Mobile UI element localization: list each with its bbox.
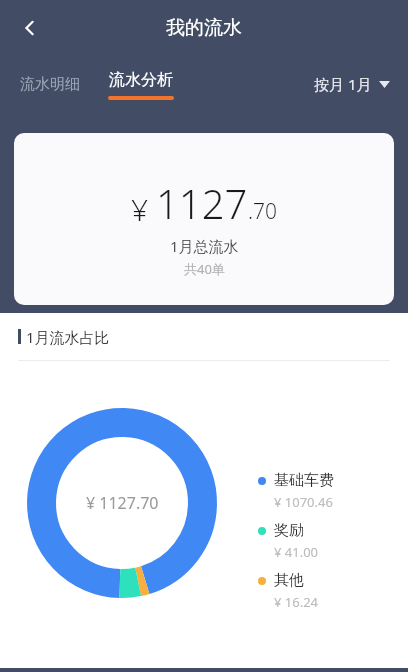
button[interactable]: Back [8,6,52,50]
staticText: 共40单 [184,260,225,278]
staticText: ¥ 1127.70 [86,492,159,514]
staticText: 我的流水 [166,16,242,40]
staticText: 其他 [274,571,304,590]
staticText: 1月流水占比 [26,327,110,347]
button[interactable]: 基础车费 [258,471,334,511]
staticText: ¥ 16.24 [274,593,319,611]
button[interactable]: 流水明细 [14,67,86,102]
staticText: ¥ 41.00 [274,543,319,561]
staticText: 奖励 [274,521,304,540]
button[interactable]: 流水分析 [102,68,180,102]
staticText: 1127 [156,176,248,230]
staticText: .70 [248,197,278,226]
staticText: 流水明细 [20,75,80,94]
staticText: ¥ 1070.46 [274,493,333,511]
button[interactable]: ¥ [14,133,394,305]
staticText: 1月总流水 [170,236,239,256]
button[interactable]: 其他 [258,571,319,611]
staticText: 基础车费 [274,471,334,490]
staticText: 流水分析 [109,70,173,90]
staticText: 按月 1月 [314,74,372,94]
staticText: ¥ [131,189,156,230]
button[interactable]: 奖励 [258,521,319,561]
button[interactable]: 按月 1月 [310,68,394,100]
